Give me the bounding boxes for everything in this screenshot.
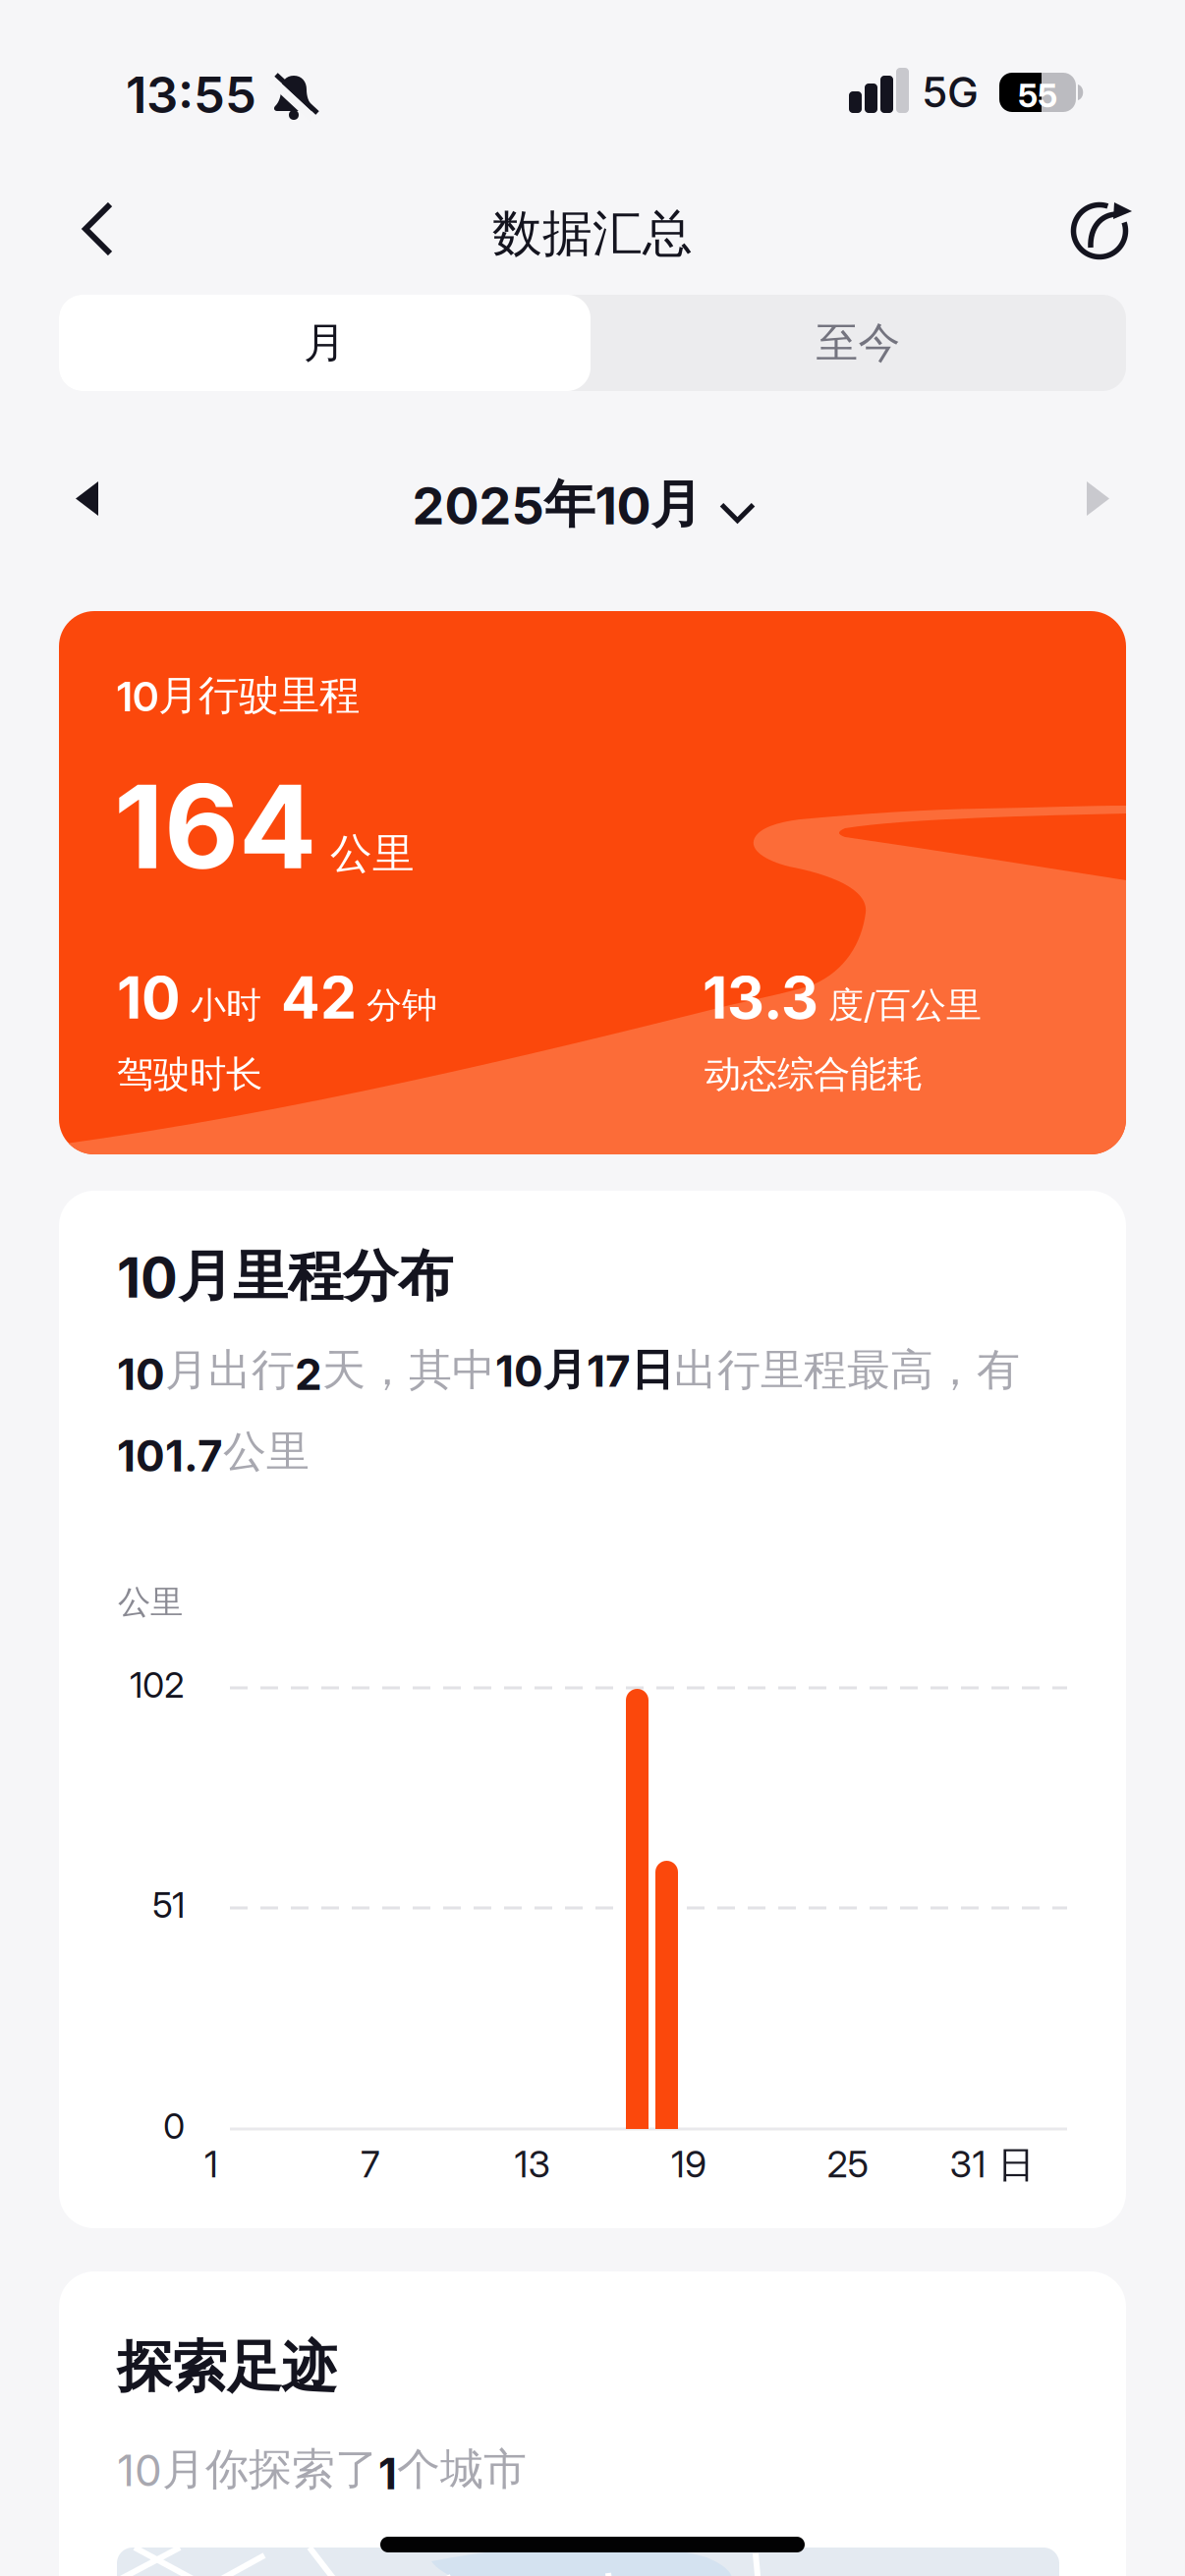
staticText: 月出行 [165, 1343, 295, 1397]
staticText: 分钟 [367, 983, 437, 1028]
staticText: 5G [922, 67, 979, 118]
staticText: 日 [998, 2142, 1034, 2188]
staticText: 动态综合能耗 [705, 1051, 923, 1097]
button[interactable]: 月 [59, 295, 591, 391]
staticText: 13.3 [703, 963, 818, 1033]
staticText: 至今 [816, 316, 901, 369]
staticText: 25 [827, 2142, 869, 2186]
staticText: 10月里程分布 [117, 1242, 453, 1311]
staticText: 小时 [191, 983, 261, 1028]
staticText: 164 [114, 756, 316, 896]
staticText: 55 [1018, 76, 1057, 115]
staticText: 102 [130, 1663, 185, 1706]
staticText: 10月行驶里程 [117, 670, 360, 721]
staticText: 101.7 [117, 1430, 223, 1482]
staticText: 公里 [330, 827, 415, 880]
staticText: 10月你探索了 [117, 2442, 378, 2497]
staticText: 7 [361, 2142, 380, 2186]
staticText: 1 [378, 2447, 397, 2500]
staticText: 驾驶时长 [117, 1051, 262, 1097]
button[interactable] [1067, 462, 1129, 535]
staticText: 公里 [223, 1425, 310, 1479]
staticText: 月 [304, 316, 346, 369]
button[interactable]: 10月行驶里程 [59, 611, 1126, 1154]
staticText: 2025年10月 [412, 473, 702, 537]
button[interactable] [1055, 183, 1152, 277]
staticText: 19 [671, 2142, 706, 2186]
button[interactable]: 至今 [591, 295, 1126, 391]
staticText: 31 [950, 2142, 986, 2186]
staticText: 10月17日 [495, 1343, 674, 1397]
button[interactable] [63, 183, 136, 277]
button[interactable] [56, 462, 118, 535]
button[interactable]: 2025年10月 [412, 473, 753, 537]
staticText: 2 [295, 1348, 322, 1400]
staticText: 出行里程最高，有 [674, 1343, 1020, 1397]
staticText: 数据汇总 [492, 202, 693, 265]
staticText: 10 [117, 963, 181, 1033]
staticText: 13 [514, 2142, 551, 2186]
staticText: 度/百公里 [828, 983, 982, 1028]
staticText: 天，其中 [322, 1343, 495, 1397]
staticText: 0 [163, 2104, 185, 2147]
staticText: 个城市 [397, 2442, 527, 2497]
staticText: 13:55 [126, 65, 256, 125]
staticText: 51 [152, 1883, 185, 1926]
staticText: 10 [117, 1348, 165, 1400]
staticText: 探索足迹 [117, 2332, 337, 2402]
staticText: 公里 [118, 1582, 183, 1623]
staticText: 42 [281, 963, 357, 1033]
staticText: 1 [204, 2142, 218, 2186]
